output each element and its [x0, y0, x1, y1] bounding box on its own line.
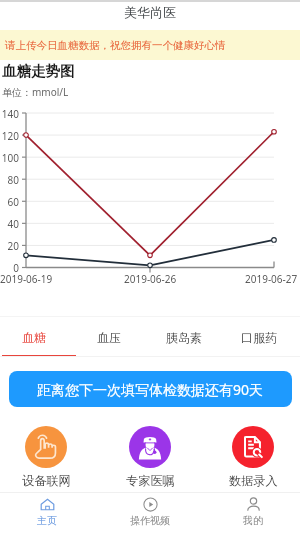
staticText: 100: [1, 151, 19, 165]
staticText: 口服药: [241, 330, 277, 345]
staticText: 美华尚医: [124, 4, 176, 20]
staticText: 80: [7, 173, 19, 187]
staticText: 0: [13, 261, 19, 275]
staticText: 2019-06-19: [0, 272, 53, 286]
staticText: 120: [1, 129, 19, 143]
staticText: 血糖走势图: [2, 62, 75, 80]
staticText: 2019-06-27: [245, 272, 298, 286]
button[interactable]: 数据录入: [217, 426, 289, 488]
staticText: 140: [1, 107, 19, 121]
staticText: 40: [7, 217, 19, 231]
staticText: 血压: [97, 330, 121, 345]
button[interactable]: 胰岛素: [146, 325, 221, 359]
staticText: 20: [7, 239, 19, 253]
button[interactable]: 专家医嘱: [114, 426, 186, 488]
staticText: 主页: [37, 514, 57, 527]
staticText: 请上传今日血糖数据，祝您拥有一个健康好心情: [5, 39, 226, 52]
staticText: 我的: [243, 514, 263, 527]
staticText: 距离您下一次填写体检数据还有90天: [37, 380, 264, 399]
button[interactable]: 设备联网: [10, 426, 82, 488]
button[interactable]: 血糖: [0, 325, 71, 359]
other: 数据录入: [232, 426, 274, 468]
staticText: 胰岛素: [166, 330, 202, 345]
button[interactable]: 操作视频: [115, 497, 185, 527]
button[interactable]: 口服药: [221, 325, 296, 359]
staticText: 操作视频: [130, 514, 170, 527]
staticText: 数据录入: [229, 473, 278, 488]
button[interactable]: 主页: [12, 497, 82, 527]
button[interactable]: 血压: [71, 325, 146, 359]
button[interactable]: 距离您下一次填写体检数据还有90天: [9, 371, 292, 407]
staticText: 2019-06-26: [124, 272, 177, 286]
staticText: 设备联网: [22, 473, 71, 488]
staticText: 60: [7, 195, 19, 209]
other: 专家医嘱: [129, 426, 171, 468]
staticText: 单位：mmol/L: [2, 85, 69, 99]
other: 设备联网: [25, 426, 67, 468]
staticText: 专家医嘱: [126, 473, 175, 488]
staticText: 血糖: [22, 330, 46, 345]
button[interactable]: 我的: [218, 497, 288, 527]
